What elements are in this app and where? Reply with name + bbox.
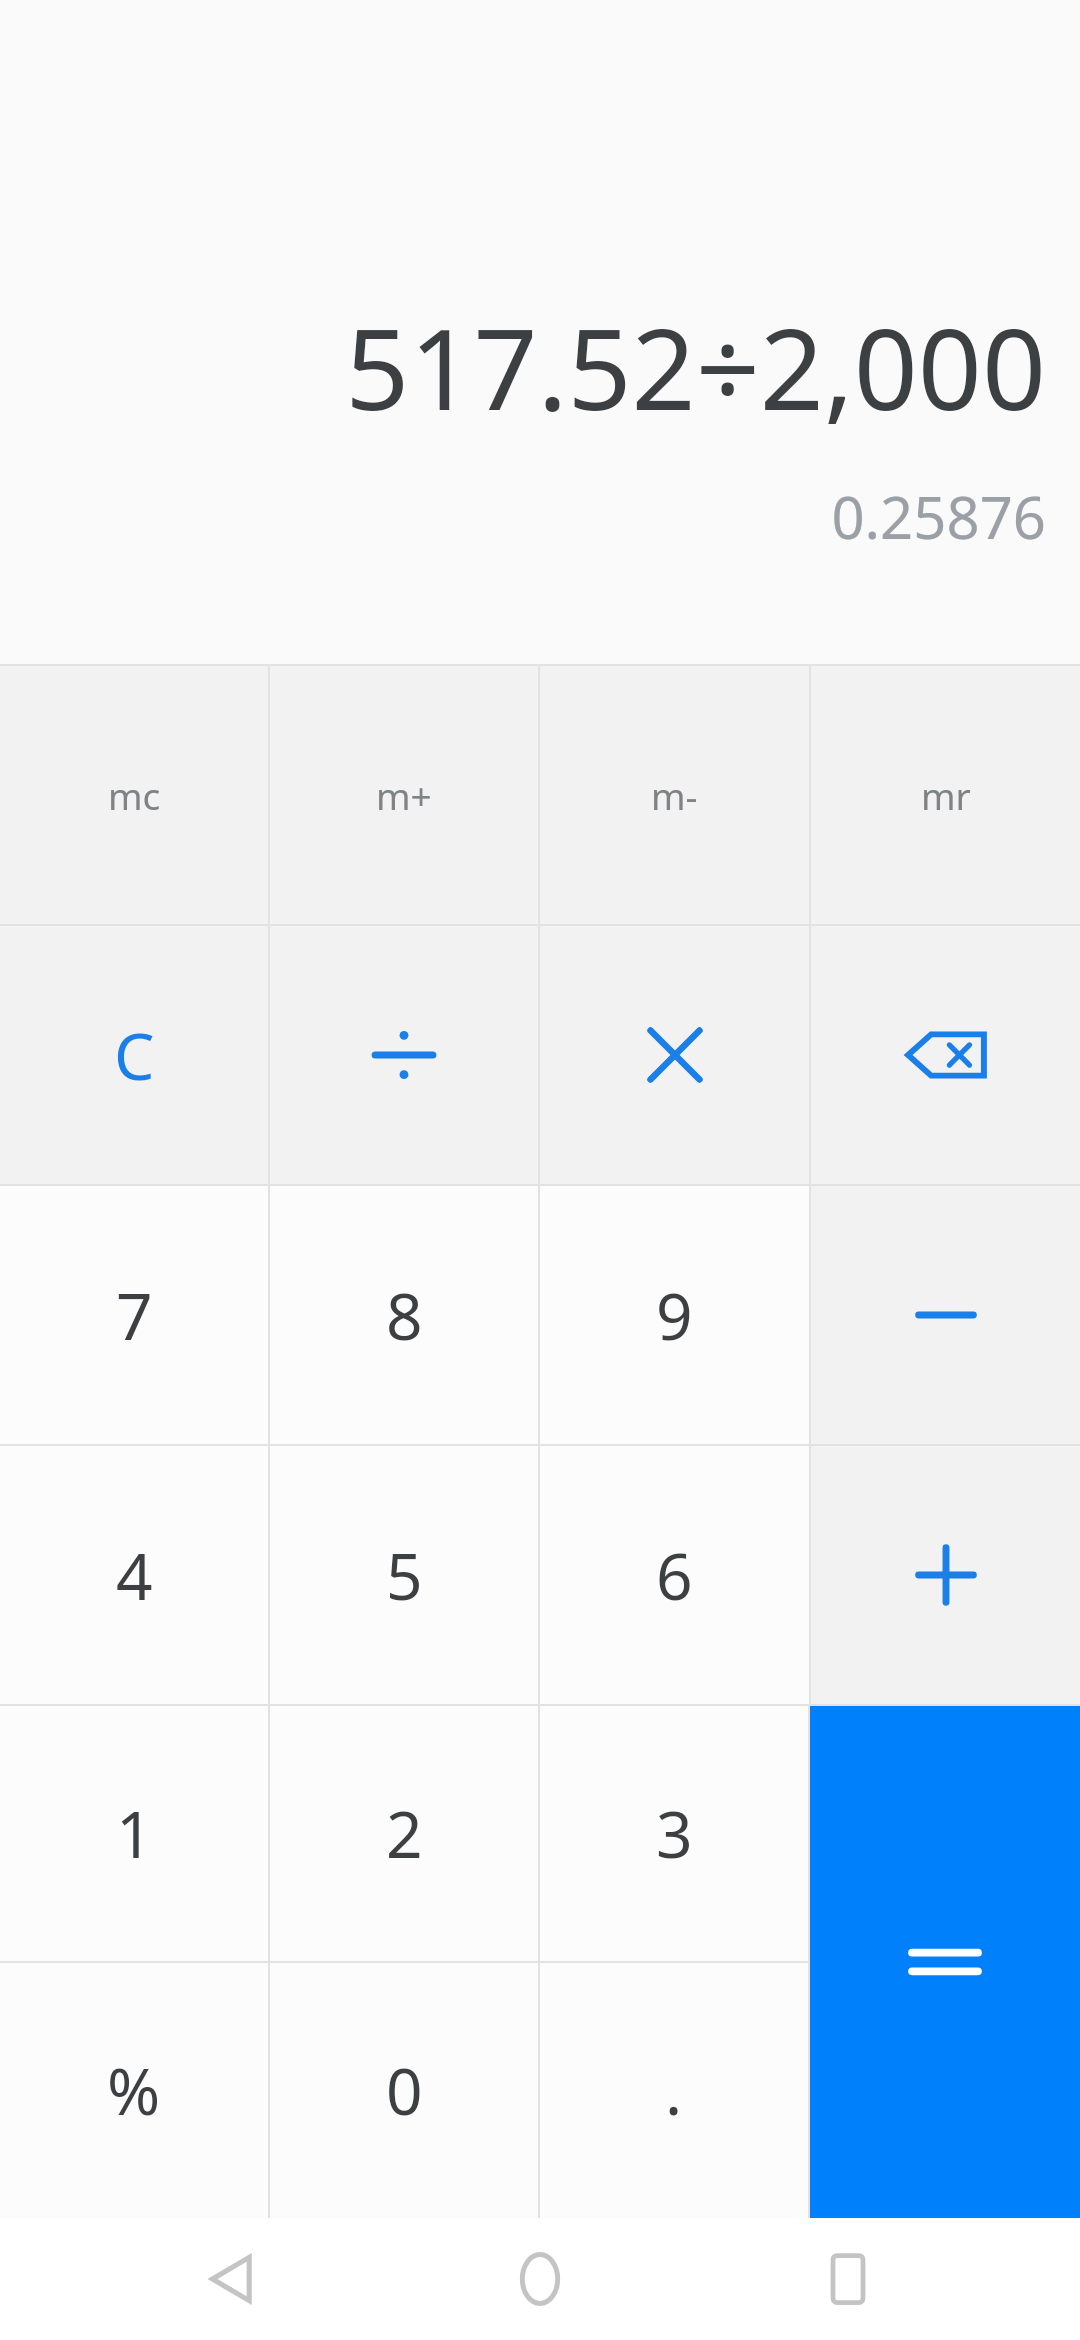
button[interactable]: 6 (540, 1446, 809, 1704)
button[interactable]: Back (158, 2218, 308, 2340)
button[interactable]: Home (465, 2218, 615, 2340)
button[interactable]: % (0, 1963, 268, 2218)
button[interactable]: 2 (270, 1706, 538, 1961)
staticText: 1 (116, 1790, 153, 1877)
staticText: 0 (386, 2047, 423, 2134)
staticText: m+ (376, 770, 432, 820)
button[interactable]: 7 (0, 1186, 268, 1444)
button[interactable]: Minus (811, 1186, 1080, 1444)
button[interactable]: Plus (811, 1446, 1080, 1704)
button[interactable]: 5 (270, 1446, 538, 1704)
button[interactable]: m- (540, 666, 809, 924)
staticText: 517.52÷2,000 (345, 290, 1046, 443)
staticText: 4 (116, 1532, 153, 1619)
staticText: mr (921, 770, 971, 820)
staticText: C (114, 1012, 155, 1099)
staticText: 2 (386, 1790, 423, 1877)
button[interactable]: Divide (270, 926, 538, 1184)
staticText: 9 (656, 1272, 693, 1359)
staticText: 3 (656, 1790, 693, 1877)
staticText: 0.25876 (831, 477, 1046, 556)
button[interactable]: mc (0, 666, 268, 924)
button[interactable]: 4 (0, 1446, 268, 1704)
button[interactable]: 0 (270, 1963, 538, 2218)
button[interactable]: m+ (270, 666, 538, 924)
staticText: mc (108, 770, 161, 820)
button[interactable]: 8 (270, 1186, 538, 1444)
button[interactable]: mr (811, 666, 1080, 924)
button[interactable]: Recent apps (773, 2218, 923, 2340)
button[interactable]: 3 (540, 1706, 808, 1961)
button[interactable]: . (540, 1963, 808, 2218)
staticText: 6 (656, 1532, 693, 1619)
button[interactable]: Backspace (811, 926, 1080, 1184)
staticText: 7 (116, 1272, 153, 1359)
button[interactable]: Multiply (540, 926, 809, 1184)
button[interactable]: 9 (540, 1186, 809, 1444)
staticText: % (107, 2047, 161, 2134)
staticText: m- (651, 770, 698, 820)
staticText: 5 (386, 1532, 423, 1619)
staticText: 8 (386, 1272, 423, 1359)
staticText: . (665, 2047, 683, 2134)
button[interactable]: Clear (0, 926, 268, 1184)
button[interactable]: Equals (810, 1706, 1080, 2218)
button[interactable]: 1 (0, 1706, 268, 1961)
